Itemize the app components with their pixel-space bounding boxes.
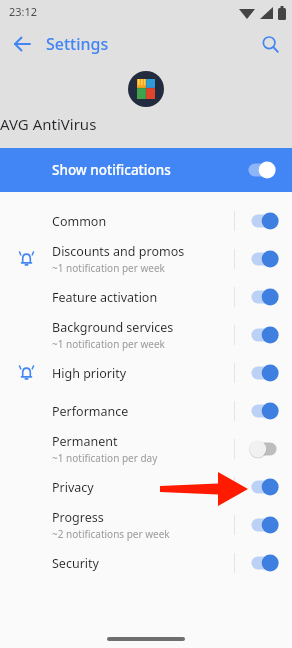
staticText: Permanent (52, 433, 118, 450)
staticText: Feature activation (52, 289, 158, 306)
staticText: AVG AntiVirus (0, 114, 292, 134)
button[interactable]: Search (248, 22, 292, 66)
button[interactable]: Permanent (0, 430, 292, 468)
staticText: Progress (52, 509, 104, 526)
button[interactable]: Feature activation (0, 278, 292, 316)
staticText: 23:12 (9, 4, 38, 19)
staticText: Discounts and promos (52, 243, 185, 260)
button[interactable]: Common (0, 202, 292, 240)
staticText: Settings (46, 33, 109, 55)
button[interactable]: Background services (0, 316, 292, 354)
staticText: Show notifications (52, 161, 171, 179)
staticText: ~1 notification per week (52, 261, 165, 275)
staticText: High priority (52, 365, 127, 382)
button[interactable]: Privacy (0, 468, 292, 506)
staticText: ~1 notification per week (52, 337, 165, 351)
staticText: Performance (52, 403, 129, 420)
button[interactable]: Progress (0, 506, 292, 544)
staticText: ~1 notification per day (52, 451, 158, 465)
staticText: ~2 notifications per week (52, 527, 170, 541)
button[interactable]: Back (0, 22, 44, 66)
button[interactable]: Security (0, 544, 292, 582)
staticText: Background services (52, 319, 174, 336)
button[interactable]: Performance (0, 392, 292, 430)
staticText: Security (52, 555, 99, 572)
button[interactable]: High priority (0, 354, 292, 392)
button[interactable]: Discounts and promos (0, 240, 292, 278)
button[interactable]: Show notifications (0, 148, 292, 192)
staticText: Common (52, 213, 107, 230)
staticText: Privacy (52, 479, 94, 496)
